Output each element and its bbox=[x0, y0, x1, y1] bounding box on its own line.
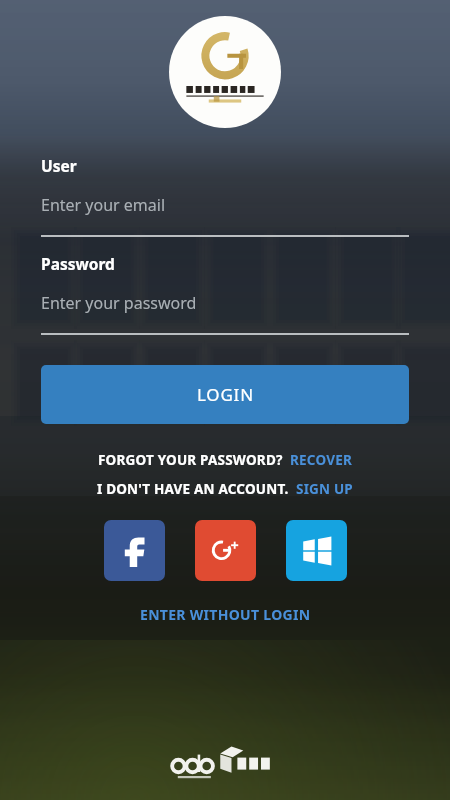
staticText: Password bbox=[41, 253, 115, 274]
button[interactable]: Sign in with Microsoft bbox=[286, 520, 347, 581]
staticText: I DON'T HAVE AN ACCOUNT. bbox=[97, 480, 289, 498]
staticText: ENTER WITHOUT LOGIN bbox=[140, 605, 311, 624]
button[interactable]: ENTER WITHOUT LOGIN bbox=[0, 605, 450, 624]
button[interactable]: Recover password bbox=[290, 451, 352, 469]
button[interactable]: LOGIN bbox=[41, 365, 409, 424]
staticText: SIGN UP bbox=[296, 480, 353, 498]
staticText: LOGIN bbox=[197, 383, 254, 406]
button[interactable]: Enter your email bbox=[41, 194, 450, 216]
button[interactable]: Enter your password bbox=[41, 292, 450, 314]
staticText: User bbox=[41, 155, 77, 176]
button[interactable]: Sign up bbox=[296, 480, 353, 498]
staticText: RECOVER bbox=[290, 451, 352, 469]
button[interactable]: Sign in with Facebook bbox=[104, 520, 165, 581]
button[interactable]: Sign in with Google Plus bbox=[195, 520, 256, 581]
staticText: FORGOT YOUR PASSWORD? bbox=[98, 451, 283, 469]
